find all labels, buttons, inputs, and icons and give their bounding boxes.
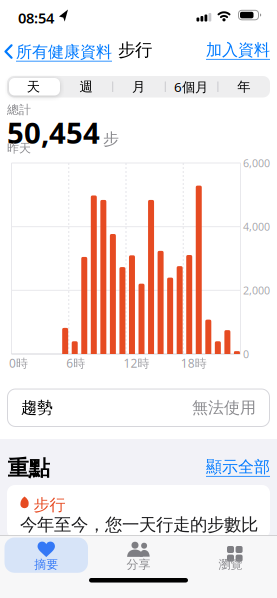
- staticText: 0: [243, 347, 249, 361]
- button[interactable]: 分享: [92, 537, 184, 573]
- button[interactable]: 摘要: [4, 537, 88, 573]
- staticText: 週: [79, 79, 92, 95]
- staticText: 50,454: [7, 113, 100, 152]
- staticText: 0時: [9, 355, 28, 371]
- button[interactable]: 所有健康資料: [4, 42, 112, 62]
- staticText: 步行: [33, 495, 65, 515]
- button[interactable]: 週: [60, 76, 112, 97]
- staticText: 分享: [126, 557, 150, 572]
- staticText: 步行: [118, 39, 152, 61]
- staticText: 總計: [7, 102, 31, 117]
- staticText: 月: [132, 79, 145, 95]
- staticText: 今年至今，您一天行走的步數比: [20, 514, 258, 535]
- staticText: 趨勢: [21, 398, 53, 418]
- staticText: 無法使用: [192, 398, 256, 418]
- staticText: 6時: [66, 355, 85, 371]
- button[interactable]: 趨勢: [7, 388, 270, 427]
- staticText: 加入資料: [206, 40, 270, 60]
- staticText: 顯示全部: [206, 457, 270, 477]
- button[interactable]: 年: [217, 76, 270, 97]
- staticText: 12時: [123, 355, 149, 371]
- staticText: 6個月: [174, 78, 208, 96]
- staticText: 所有健康資料: [16, 42, 112, 62]
- button[interactable]: 月: [112, 76, 165, 97]
- staticText: 18時: [181, 355, 207, 371]
- staticText: 摘要: [34, 557, 58, 572]
- staticText: 昨天: [7, 141, 31, 156]
- staticText: 瀏覽: [218, 557, 242, 572]
- staticText: 6,000: [243, 156, 270, 170]
- staticText: 年: [237, 79, 250, 95]
- staticText: 重點: [7, 455, 49, 481]
- staticText: 4,000: [243, 220, 270, 234]
- button[interactable]: 加入資料: [200, 42, 270, 58]
- staticText: 天: [27, 79, 40, 95]
- staticText: 08:54: [18, 8, 54, 27]
- button[interactable]: 6個月: [165, 76, 217, 97]
- button[interactable]: 瀏覽: [184, 537, 276, 573]
- button[interactable]: 顯示全部: [200, 459, 270, 475]
- staticText: 步: [103, 129, 119, 149]
- button[interactable]: 步行: [7, 485, 270, 538]
- button[interactable]: 天: [7, 76, 60, 97]
- staticText: 2,000: [243, 283, 270, 297]
